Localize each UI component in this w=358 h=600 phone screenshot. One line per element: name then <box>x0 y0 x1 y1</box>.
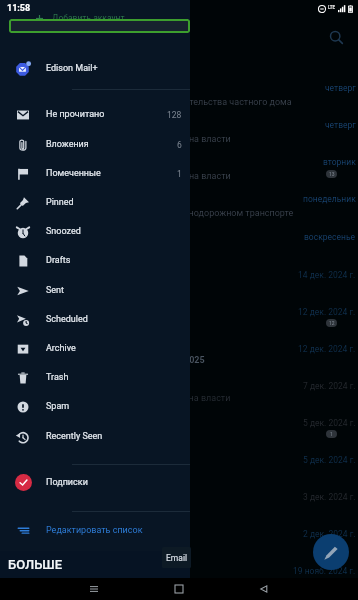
staticText: Вложения <box>46 139 89 150</box>
staticText: 1 <box>330 431 333 437</box>
staticText: Редактировать список <box>46 525 143 536</box>
staticText: вторник <box>323 157 356 167</box>
staticText: 2025 <box>184 355 205 366</box>
button[interactable]: Pinned <box>0 188 190 217</box>
staticText: Подписки <box>46 477 88 488</box>
button[interactable] <box>9 19 190 33</box>
button[interactable]: Recent apps <box>80 578 108 600</box>
staticText: Добавить аккаунт <box>52 13 125 23</box>
staticText: Sent <box>46 285 65 296</box>
button[interactable]: Archive <box>0 334 190 363</box>
button[interactable]: Не прочитано <box>0 100 190 129</box>
staticText: 12 дек. 2024 г. <box>298 307 356 317</box>
button[interactable]: Drafts <box>0 246 190 275</box>
button[interactable]: Recently Seen <box>0 422 190 451</box>
staticText: 12 <box>329 320 335 326</box>
staticText: Snoozed <box>46 226 81 237</box>
button[interactable]: Compose email <box>313 534 349 570</box>
button[interactable]: Редактировать список <box>0 517 190 543</box>
staticText: Drafts <box>46 255 71 266</box>
staticText: ана власти <box>184 171 231 182</box>
staticText: Email <box>166 553 188 563</box>
button[interactable]: Trash <box>0 363 190 392</box>
staticText: четверг <box>325 83 356 93</box>
staticText: 6 <box>177 140 182 150</box>
staticText: Помеченные <box>46 168 101 179</box>
button[interactable]: БОЛЬШЕ <box>0 551 190 578</box>
staticText: ана власти <box>184 134 231 145</box>
staticText: ительства частного дома <box>184 97 292 108</box>
staticText: 3 дек. 2024 г. <box>303 492 356 502</box>
staticText: Recently Seen <box>46 431 103 442</box>
staticText: понедельник <box>303 194 356 204</box>
staticText: 12 дек. 2024 г. <box>298 344 356 354</box>
staticText: 7 дек. 2024 г. <box>303 381 356 391</box>
staticText: 11:58 <box>7 3 31 14</box>
staticText: знодорожном транспорте <box>184 208 294 219</box>
button[interactable]: Вложения <box>0 130 190 159</box>
staticText: воскресенье <box>304 232 356 242</box>
button[interactable]: Edison Mail+ <box>0 54 190 82</box>
staticText: Spam <box>46 401 70 412</box>
staticText: 1 <box>177 169 182 179</box>
staticText: Archive <box>46 343 76 354</box>
staticText: БОЛЬШЕ <box>8 557 63 572</box>
button[interactable]: Scheduled <box>0 305 190 334</box>
button[interactable]: Home <box>165 578 193 600</box>
button[interactable]: Подписки <box>0 468 190 496</box>
staticText: 2 дек. 2024 г. <box>303 529 356 539</box>
staticText: зна власти <box>184 393 231 404</box>
button[interactable]: Помеченные <box>0 159 190 188</box>
staticText: 128 <box>167 110 182 120</box>
staticText: 19 нояб. 2024 г. <box>293 566 356 576</box>
button[interactable]: Spam <box>0 392 190 421</box>
staticText: Edison Mail+ <box>46 63 98 74</box>
button[interactable]: Search <box>325 26 347 48</box>
staticText: 5 дек. 2024 г. <box>303 455 356 465</box>
staticText: LTE <box>328 5 336 10</box>
button[interactable]: Sent <box>0 276 190 305</box>
staticText: 14 дек. 2024 г. <box>298 270 356 280</box>
button[interactable]: Back <box>250 578 278 600</box>
staticText: 5 дек. 2024 г. <box>303 418 356 428</box>
staticText: Не прочитано <box>46 109 105 120</box>
staticText: 13 <box>329 171 335 177</box>
staticText: Pinned <box>46 197 74 208</box>
button[interactable]: Snoozed <box>0 217 190 246</box>
staticText: Trash <box>46 372 69 383</box>
staticText: четверг <box>325 120 356 130</box>
staticText: Scheduled <box>46 314 88 325</box>
